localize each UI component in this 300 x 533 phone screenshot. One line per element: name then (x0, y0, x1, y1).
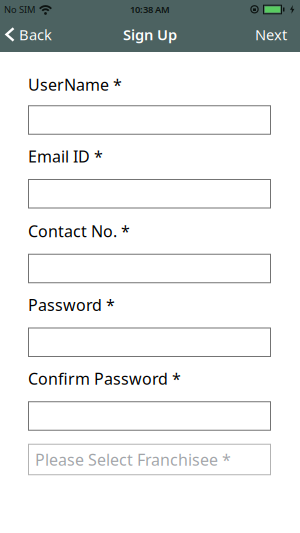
staticText: No SIM (4, 3, 35, 16)
button[interactable]: Next (255, 25, 300, 44)
button[interactable]: Email ID (28, 179, 271, 208)
button[interactable]: Back (0, 25, 52, 44)
button[interactable]: Confirm Password (28, 401, 271, 431)
button[interactable]: Please Select Franchisee * (28, 444, 271, 475)
staticText: Confirm Password * (28, 368, 181, 389)
staticText: Sign Up (123, 25, 177, 44)
staticText: UserName * (28, 74, 122, 95)
staticText: Password * (28, 294, 115, 315)
staticText: Back (19, 25, 52, 44)
staticText: 10:38 AM (130, 3, 170, 16)
staticText: Contact No. * (28, 220, 130, 242)
button[interactable]: Password (28, 327, 271, 357)
button[interactable]: UserName (28, 105, 271, 135)
staticText: Please Select Franchisee * (35, 449, 231, 470)
staticText: Next (255, 25, 287, 44)
staticText: Email ID * (28, 146, 103, 167)
button[interactable]: Contact No. (28, 254, 271, 283)
